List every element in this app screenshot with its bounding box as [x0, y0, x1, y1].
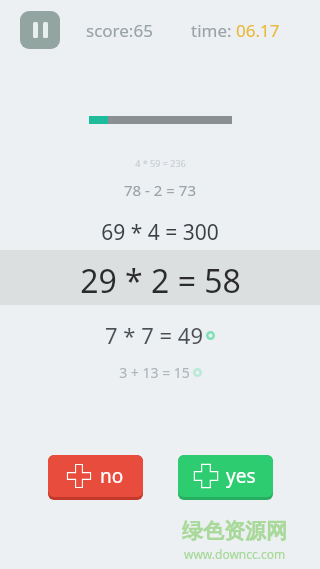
staticText: www.downcc.com	[184, 546, 286, 562]
button[interactable]: Pause	[20, 11, 60, 49]
staticText: 绿色资源网	[182, 518, 287, 544]
staticText: 7 * 7 = 49	[105, 320, 203, 350]
staticText: score:65	[86, 19, 153, 42]
staticText: 29 * 2 = 58	[80, 259, 241, 303]
staticText: yes	[226, 463, 256, 489]
staticText: 69 * 4 = 300	[101, 218, 219, 247]
button[interactable]: no	[48, 455, 143, 500]
button[interactable]: yes	[178, 455, 273, 500]
staticText: time: 06.17	[191, 19, 280, 42]
staticText: 4 * 59 = 236	[135, 157, 186, 169]
staticText: no	[100, 463, 124, 489]
staticText: 3 + 13 = 15	[119, 363, 190, 382]
staticText: 78 - 2 = 73	[124, 180, 196, 200]
